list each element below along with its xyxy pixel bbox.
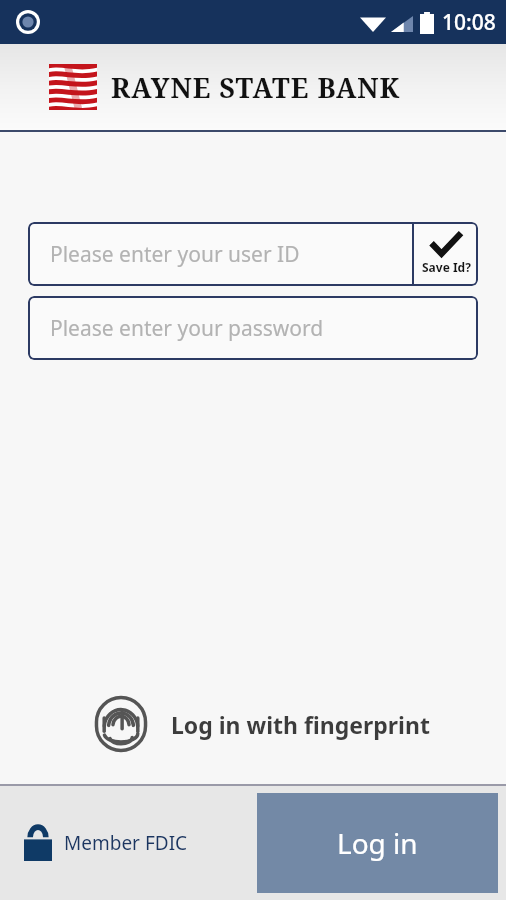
button[interactable]: Member FDIC <box>24 825 188 861</box>
staticText: Please enter your user ID <box>50 240 300 269</box>
staticText: RAYNE STATE BANK <box>111 69 401 106</box>
button[interactable]: Please enter your user ID <box>28 222 412 286</box>
staticText: Please enter your password <box>50 314 324 343</box>
button[interactable]: Log in with fingerprint <box>0 684 506 764</box>
button[interactable]: Log in <box>257 793 498 893</box>
staticText: Log in with fingerprint <box>171 709 430 740</box>
staticText: Save Id? <box>422 259 471 275</box>
staticText: Member FDIC <box>64 830 188 856</box>
button[interactable]: Please enter your password <box>28 296 478 360</box>
button[interactable]: Save Id <box>414 222 478 286</box>
staticText: Log in <box>337 824 418 862</box>
staticText: 10:08 <box>442 8 496 37</box>
